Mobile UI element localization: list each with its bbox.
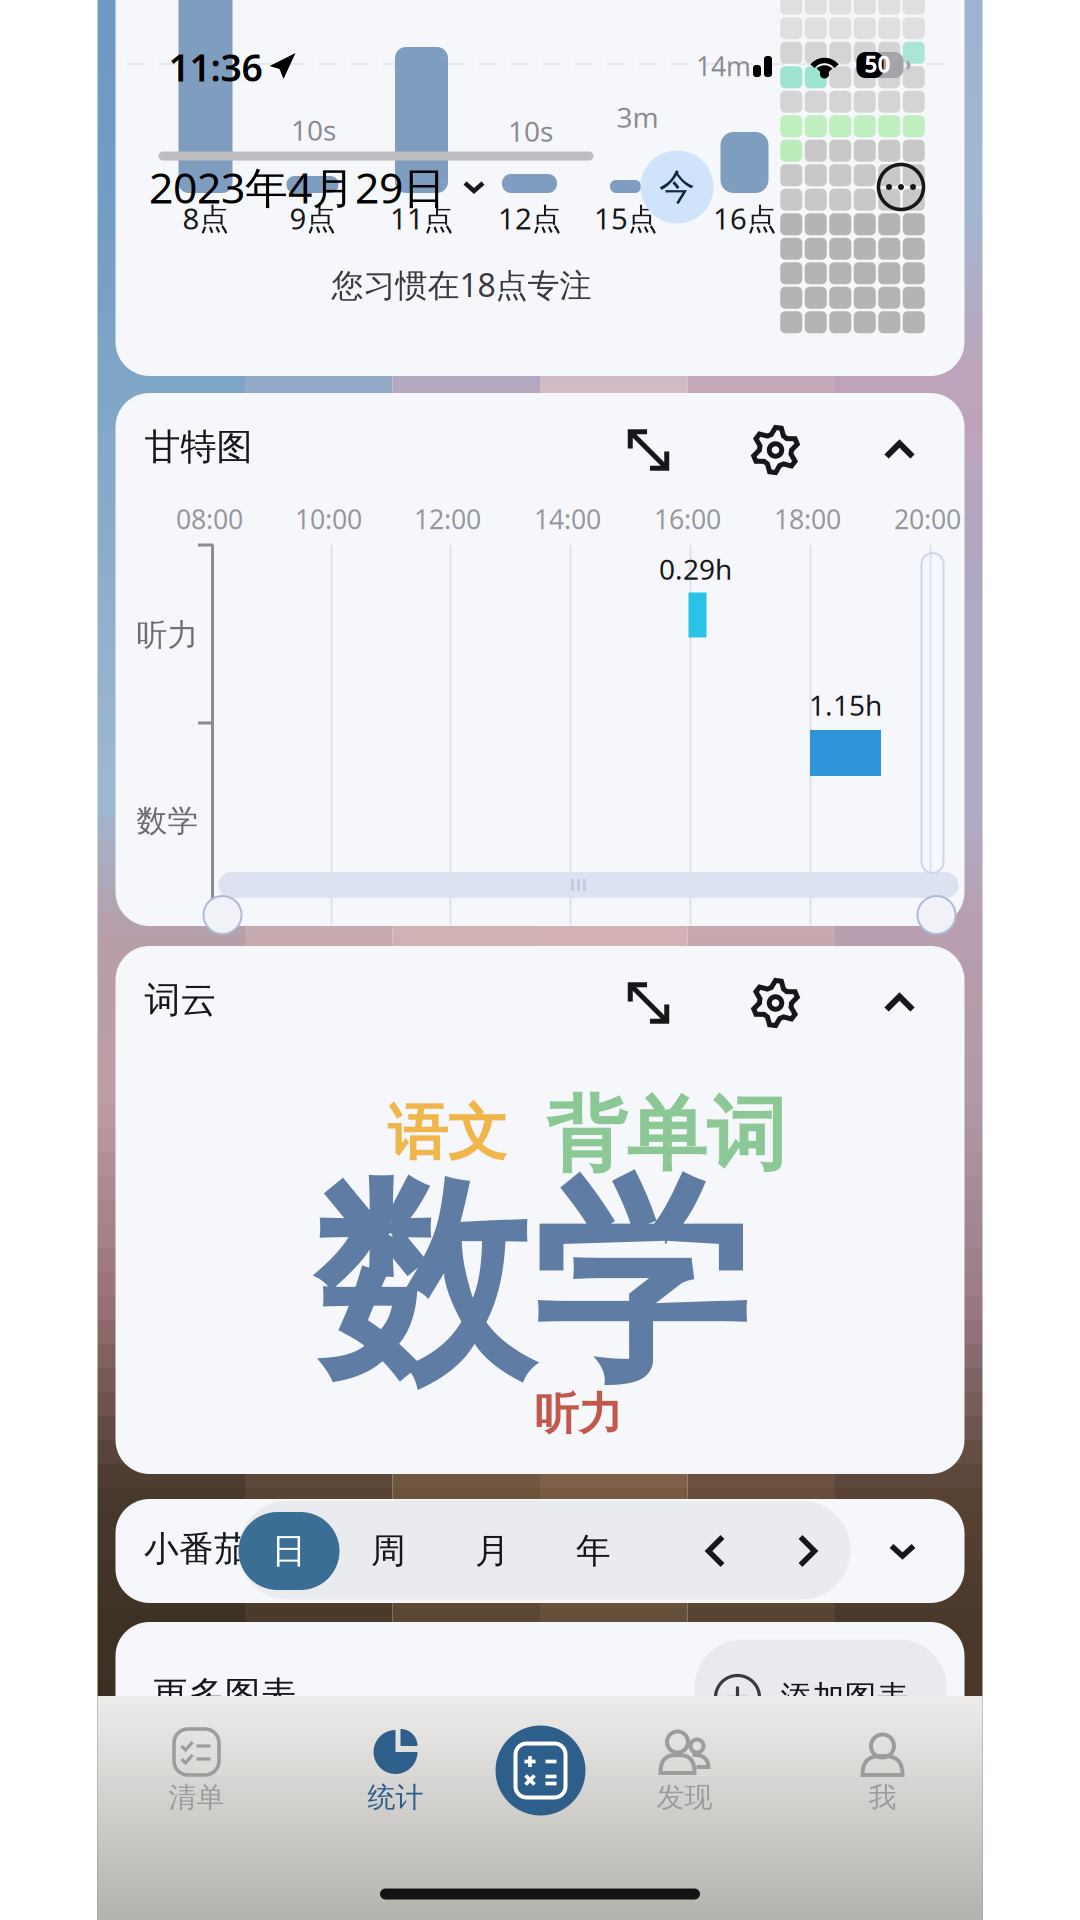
staticText: 数学 <box>136 802 198 840</box>
staticText: 统计 <box>367 1780 423 1815</box>
staticText: 12点 <box>498 198 561 237</box>
button[interactable]: Next <box>776 1511 838 1591</box>
staticText: 小番茄 <box>144 1528 249 1570</box>
staticText: 14:00 <box>534 501 601 537</box>
staticText: 10s <box>508 112 553 150</box>
button[interactable]: Collapse <box>860 411 938 489</box>
staticText: 日 <box>271 1530 306 1572</box>
staticText: 3m <box>616 98 658 136</box>
staticText: 18:00 <box>774 501 841 537</box>
staticText: 我 <box>868 1780 896 1815</box>
button[interactable]: 清单 <box>138 1696 254 1826</box>
staticText: 背单词 <box>546 1086 786 1184</box>
staticText: 更多图表 <box>152 1673 296 1717</box>
staticText: 数学 <box>314 1151 748 1418</box>
staticText: 8点 <box>182 198 228 237</box>
staticText: 您习惯在18点专注 <box>331 263 591 306</box>
button[interactable]: 添加图表 <box>694 1639 946 1735</box>
staticText: 听力 <box>534 1387 622 1441</box>
button[interactable]: 月 <box>447 1512 537 1590</box>
button[interactable]: Collapse <box>860 964 938 1042</box>
staticText: 0.29h <box>659 550 732 588</box>
staticText: 12:00 <box>414 501 481 537</box>
button[interactable]: 统计 <box>337 1696 453 1826</box>
button[interactable]: 我 <box>824 1696 940 1826</box>
staticText: 9点 <box>289 198 335 237</box>
staticText: 2023年4月29日 <box>149 159 446 215</box>
staticText: 15点 <box>594 198 657 237</box>
button[interactable]: 今 <box>640 150 713 223</box>
staticText: 20:00 <box>894 501 961 537</box>
staticText: 添加图表 <box>780 1678 908 1717</box>
button[interactable]: 日 <box>238 1512 339 1590</box>
staticText: 08:00 <box>176 501 243 537</box>
staticText: 10:00 <box>295 501 362 537</box>
staticText: 甘特图 <box>144 425 252 469</box>
button[interactable]: Expand <box>609 964 687 1042</box>
staticText: 清单 <box>168 1780 224 1815</box>
staticText: 发现 <box>656 1780 712 1815</box>
button[interactable]: Expand <box>866 1515 938 1587</box>
button[interactable]: Settings <box>736 411 814 489</box>
staticText: 10s <box>291 111 336 149</box>
staticText: 11:36 <box>168 42 262 92</box>
button[interactable]: Previous <box>684 1511 746 1591</box>
staticText: 语文 <box>387 1096 507 1170</box>
staticText: 16点 <box>713 198 776 237</box>
staticText: 年 <box>576 1530 611 1572</box>
button[interactable]: Expand <box>609 411 687 489</box>
button[interactable]: More options <box>867 153 935 221</box>
staticText: 周 <box>371 1530 406 1572</box>
button[interactable]: 年 <box>548 1512 638 1590</box>
button[interactable]: 2023年4月29日 <box>149 150 486 224</box>
staticText: 听力 <box>136 616 198 654</box>
staticText: 今 <box>659 165 695 209</box>
staticText: 50 <box>864 49 890 79</box>
staticText: 14m <box>696 48 751 84</box>
staticText: 16:00 <box>654 501 721 537</box>
button[interactable]: 周 <box>343 1512 433 1590</box>
button[interactable]: New entry <box>482 1712 598 1828</box>
button[interactable]: Settings <box>736 964 814 1042</box>
staticText: 月 <box>475 1530 510 1572</box>
staticText: 词云 <box>144 978 216 1022</box>
staticText: 11点 <box>390 198 453 237</box>
staticText: 1.15h <box>809 686 882 724</box>
button[interactable]: 发现 <box>626 1696 742 1826</box>
